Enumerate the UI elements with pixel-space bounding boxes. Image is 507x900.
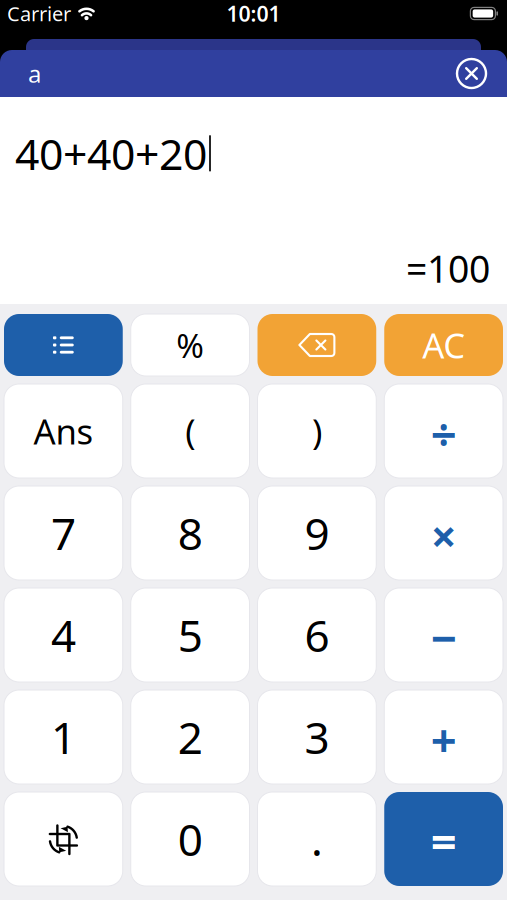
button[interactable]: 7	[4, 486, 123, 580]
button[interactable]: 6	[257, 588, 376, 682]
staticText: 6	[304, 606, 329, 664]
button[interactable]: Backspace	[257, 314, 376, 376]
staticText: =	[431, 810, 457, 871]
button[interactable]: 5	[131, 588, 250, 682]
button[interactable]: )	[257, 384, 376, 478]
staticText: AC	[422, 322, 465, 368]
staticText: 1	[51, 708, 76, 766]
button[interactable]: =	[384, 792, 503, 886]
staticText: .	[311, 810, 323, 868]
button[interactable]: .	[257, 792, 376, 886]
staticText: 4	[51, 606, 76, 664]
staticText: +	[431, 709, 457, 770]
staticText: (	[185, 408, 195, 454]
button[interactable]: ÷	[384, 384, 503, 478]
staticText: 8	[178, 504, 203, 562]
staticText: )	[312, 408, 322, 454]
button[interactable]: 8	[131, 486, 250, 580]
staticText: 0	[178, 810, 203, 868]
staticText: ÷	[431, 403, 457, 464]
staticText: 9	[304, 504, 329, 562]
staticText: Carrier	[7, 0, 71, 27]
button[interactable]: −	[384, 588, 503, 682]
button[interactable]: 4	[4, 588, 123, 682]
button[interactable]: ×	[384, 486, 503, 580]
button[interactable]: 3	[257, 690, 376, 784]
staticText: ×	[431, 505, 457, 566]
button[interactable]: +	[384, 690, 503, 784]
button[interactable]: 1	[4, 690, 123, 784]
staticText: Ans	[33, 408, 93, 454]
staticText: a	[28, 58, 41, 89]
button[interactable]: Close	[457, 59, 507, 88]
staticText: −	[431, 607, 457, 668]
button[interactable]: Rotate	[4, 792, 123, 886]
staticText: =100	[406, 243, 490, 293]
button[interactable]: 2	[131, 690, 250, 784]
button[interactable]: 9	[257, 486, 376, 580]
staticText: 3	[304, 708, 329, 766]
button[interactable]: (	[131, 384, 250, 478]
staticText: %	[176, 323, 204, 367]
button[interactable]: History	[4, 314, 123, 376]
button[interactable]: a	[0, 58, 41, 89]
staticText: 10:01	[226, 0, 280, 28]
button[interactable]: Ans	[4, 384, 123, 478]
button[interactable]: 0	[131, 792, 250, 886]
staticText: 40+40+20	[15, 125, 207, 182]
staticText: 2	[178, 708, 203, 766]
staticText: 5	[178, 606, 203, 664]
button[interactable]: %	[131, 314, 250, 376]
staticText: 7	[51, 504, 76, 562]
button[interactable]: AC	[384, 314, 503, 376]
